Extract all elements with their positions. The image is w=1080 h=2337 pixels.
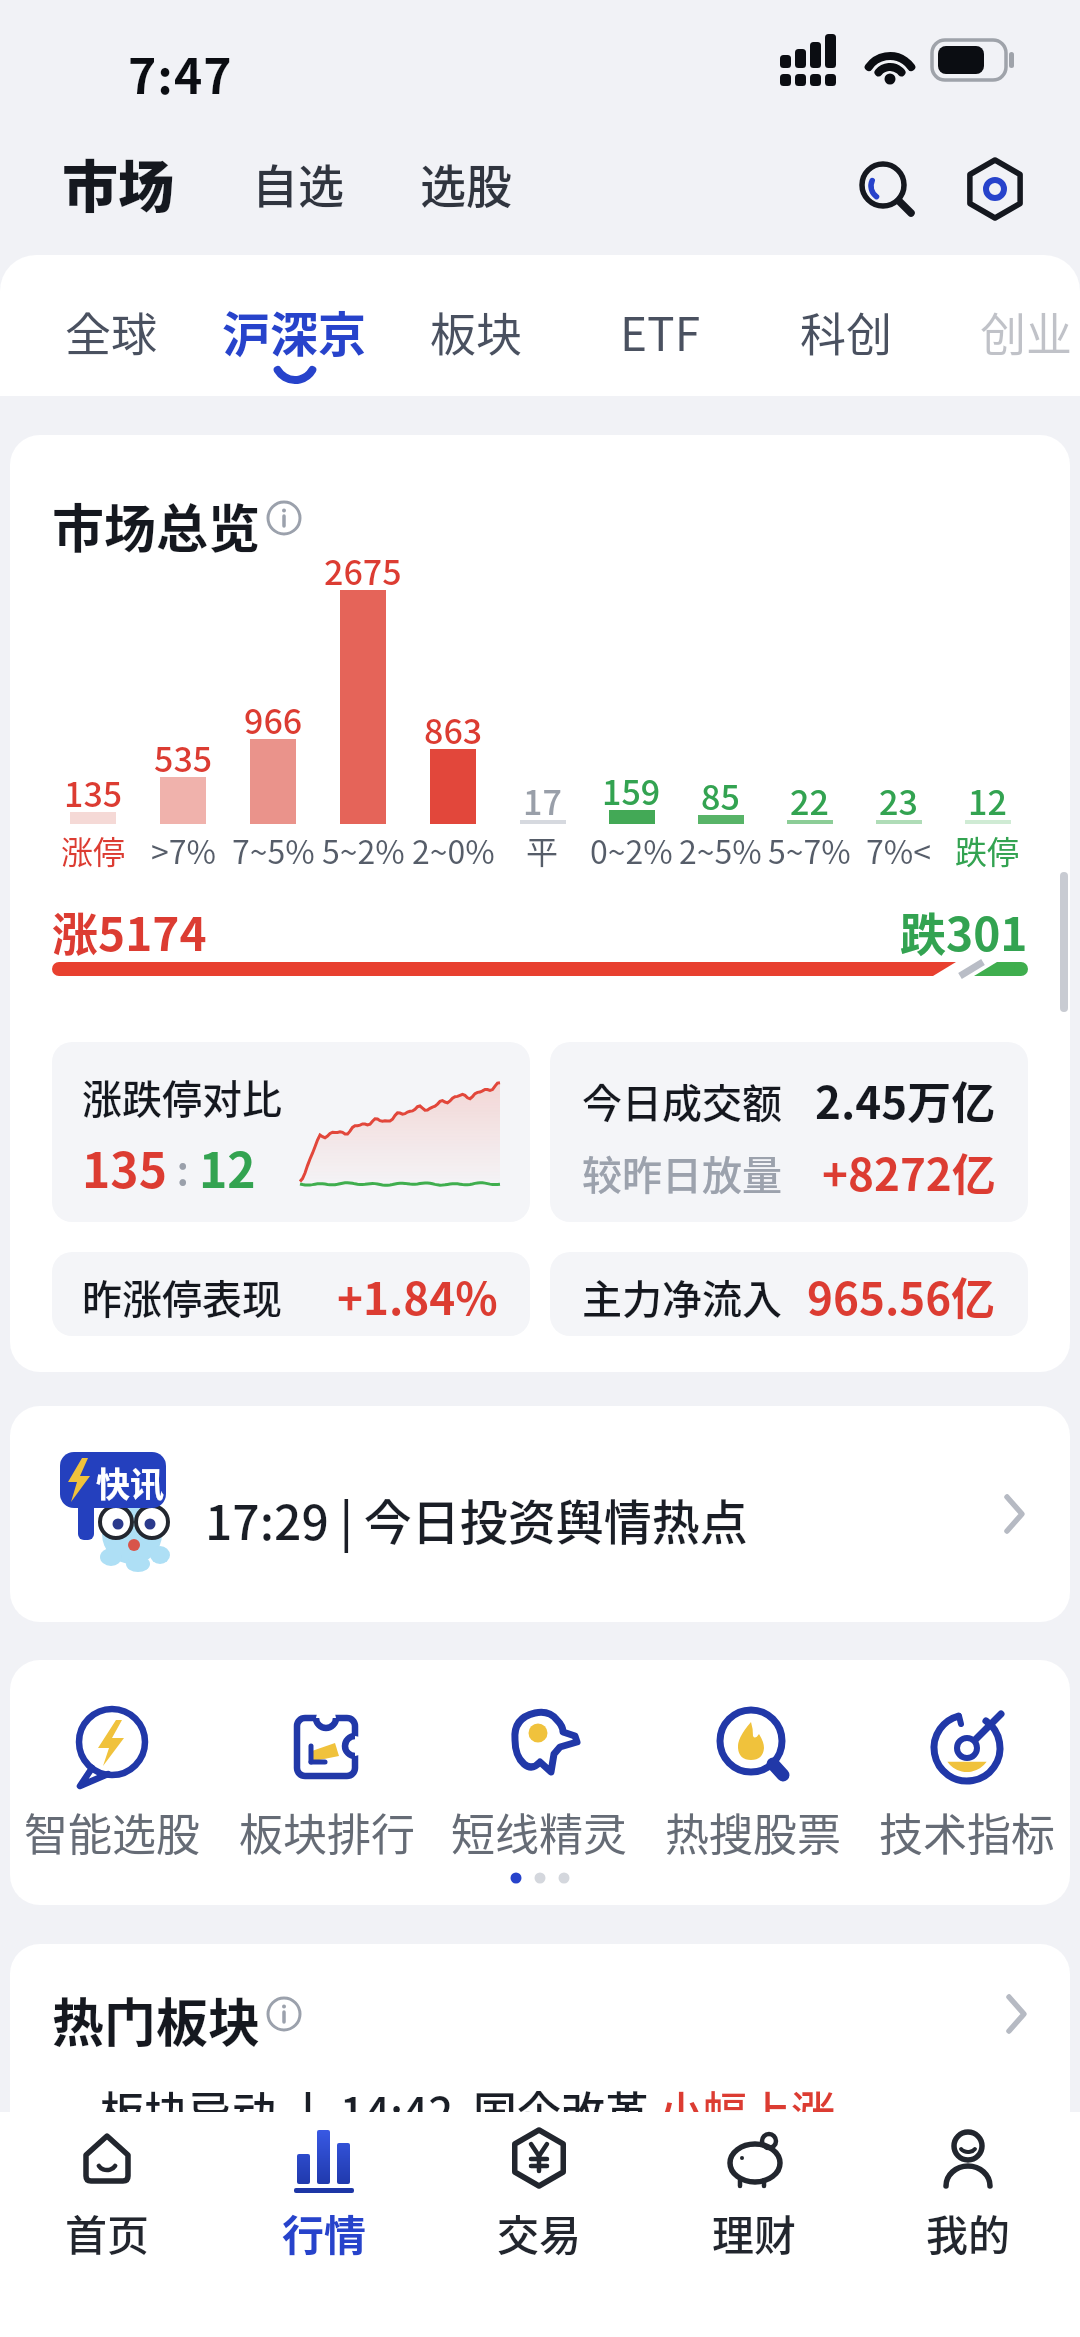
staticText: 135: [64, 768, 123, 812]
staticText: 17: [523, 776, 562, 820]
staticText: +1.84%: [337, 1264, 498, 1328]
staticText: 2~5%: [679, 827, 762, 873]
staticText: 板块: [430, 298, 522, 365]
staticText: 17:29 | 今日投资舆情热点: [205, 1484, 748, 1554]
staticText: 涨5174: [52, 898, 207, 965]
staticText: 首页: [65, 2202, 150, 2263]
staticText: 市场总览: [52, 488, 261, 563]
staticText: 交易: [497, 2202, 582, 2263]
staticText: 快讯: [96, 1458, 164, 1507]
staticText: 23: [879, 776, 918, 820]
staticText: 市场: [62, 142, 174, 223]
staticText: 12: [968, 776, 1007, 820]
staticText: 965.56亿: [807, 1264, 996, 1328]
staticText: 535: [154, 733, 213, 777]
staticText: 涨跌停对比: [82, 1068, 282, 1126]
staticText: 沪深京: [222, 296, 367, 366]
staticText: 7%<: [866, 827, 931, 873]
staticText: 热搜股票: [665, 1800, 841, 1864]
staticText: 行情: [282, 2202, 367, 2263]
staticText: 12: [199, 1132, 256, 1202]
staticText: 966: [244, 695, 303, 739]
staticText: 创业: [980, 298, 1072, 365]
staticText: 昨涨停表现: [82, 1268, 282, 1326]
staticText: 理财: [712, 2202, 797, 2263]
staticText: 5~2%: [322, 827, 405, 873]
staticText: 2.45万亿: [815, 1068, 996, 1132]
staticText: 863: [424, 705, 483, 749]
staticText: 7~5%: [232, 827, 315, 873]
staticText: 我的: [926, 2202, 1011, 2263]
staticText: >7%: [151, 827, 216, 873]
staticText: 主力净流入: [582, 1268, 782, 1326]
staticText: 今日成交额: [582, 1072, 782, 1130]
staticText: 自选: [252, 150, 344, 217]
staticText: 技术指标: [879, 1800, 1055, 1864]
staticText: :: [167, 1136, 199, 1197]
staticText: 5~7%: [768, 827, 851, 873]
staticText: 较昨日放量: [582, 1144, 782, 1202]
staticText: 选股: [420, 150, 512, 217]
staticText: 平: [526, 827, 559, 873]
staticText: ETF: [620, 298, 701, 365]
staticText: 小幅上涨: [659, 2078, 835, 2142]
staticText: 板块异动 丨 14:42 国企改革: [100, 2078, 659, 2142]
staticText: 板块排行: [239, 1800, 415, 1864]
staticText: 135: [82, 1132, 167, 1202]
staticText: 科创: [800, 298, 892, 365]
staticText: 159: [602, 766, 661, 810]
staticText: 跌301: [900, 898, 1028, 965]
staticText: 85: [701, 771, 740, 815]
staticText: 热门板块: [52, 1982, 261, 2057]
staticText: 7:47: [128, 38, 233, 108]
staticText: 2675: [324, 546, 402, 590]
staticText: 跌停: [955, 827, 1020, 873]
staticText: 22: [790, 776, 829, 820]
staticText: 2~0%: [412, 827, 495, 873]
staticText: 短线精灵: [451, 1800, 627, 1864]
staticText: 0~2%: [590, 827, 673, 873]
staticText: 涨停: [61, 827, 126, 873]
staticText: 智能选股: [24, 1800, 200, 1864]
staticText: 全球: [65, 298, 157, 365]
staticText: +8272亿: [822, 1140, 996, 1204]
